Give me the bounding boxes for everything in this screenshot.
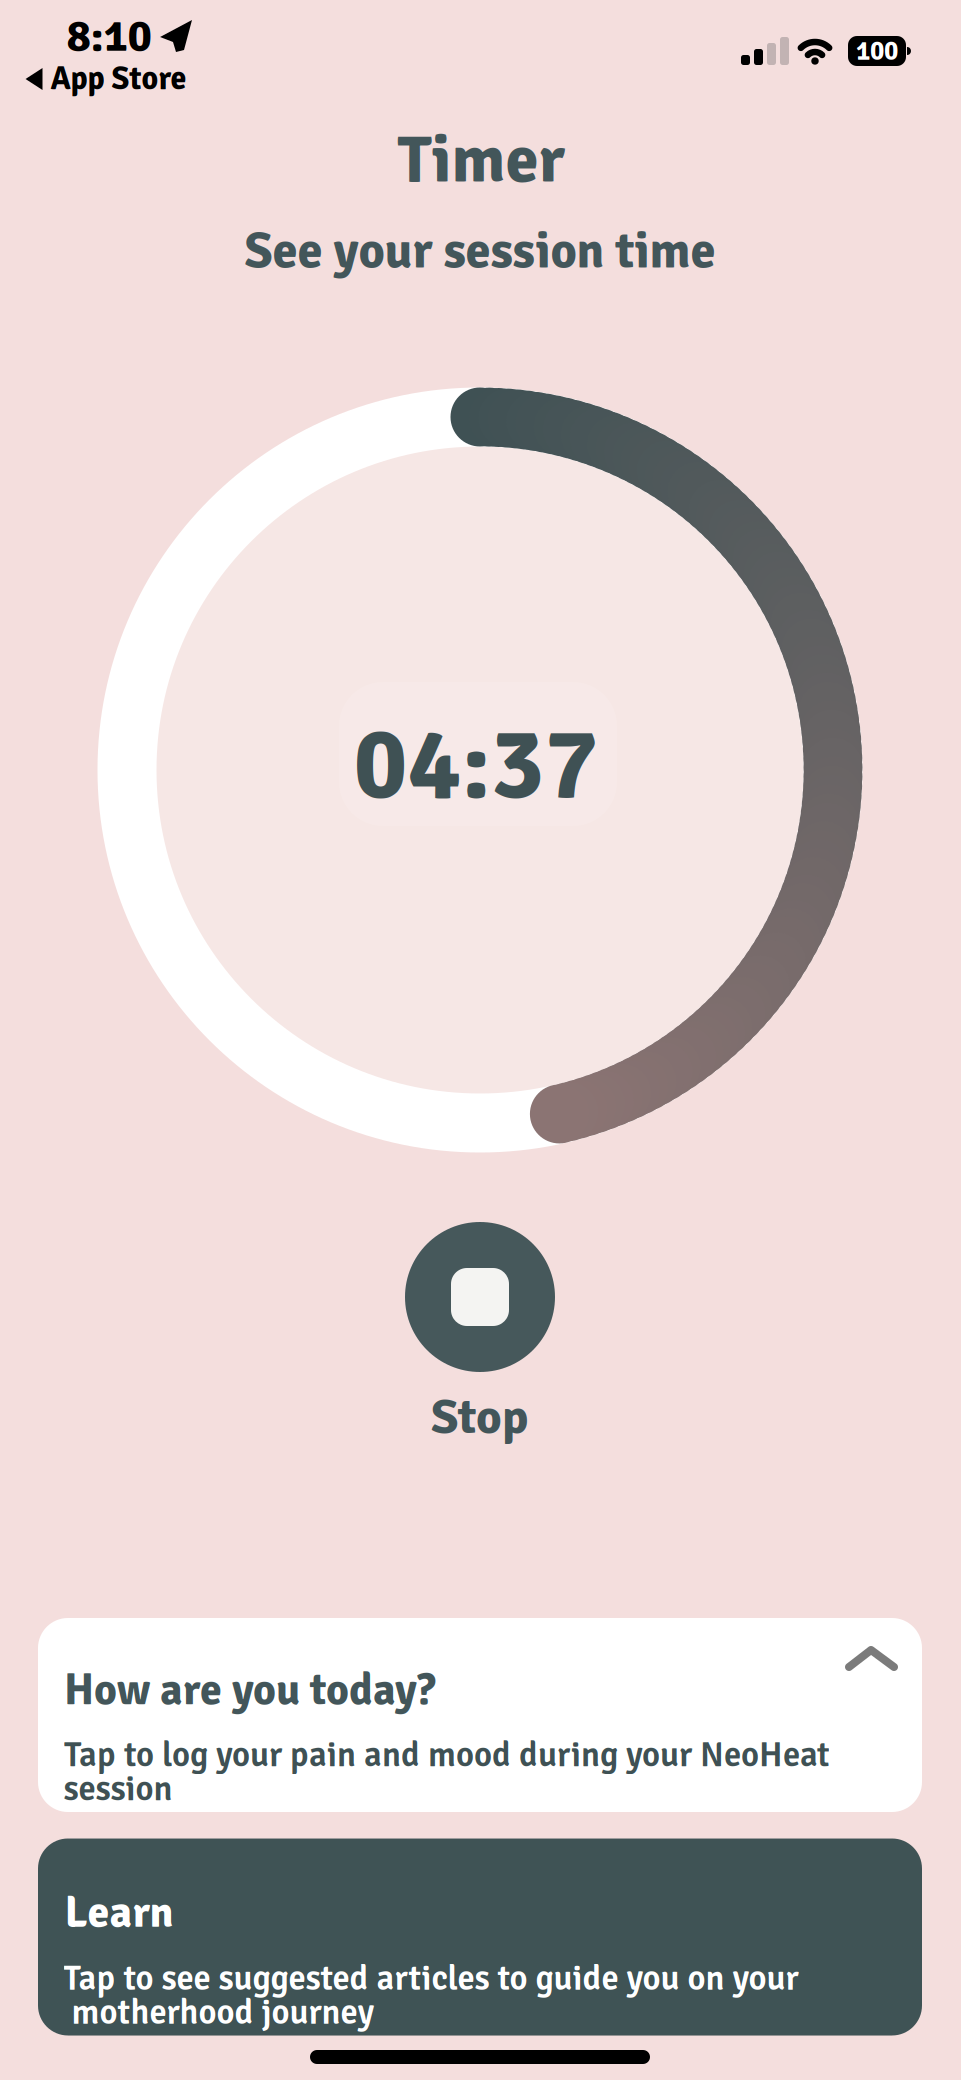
staticText: Tap to log your pain and mood during you… (64, 1734, 830, 1776)
staticText: Stop (431, 1387, 529, 1447)
staticText: Tap to see suggested articles to guide y… (63, 1957, 798, 2000)
staticText: See your session time (244, 220, 715, 282)
button[interactable]: Stop (400, 1222, 560, 1452)
button[interactable] (38, 1618, 922, 1812)
staticText: 04:37 (353, 703, 598, 827)
staticText: How are you today? (64, 1663, 436, 1717)
staticText: 100 (856, 35, 898, 67)
staticText: Learn (64, 1885, 173, 1940)
staticText: 8:10 (66, 8, 151, 64)
button[interactable]: Back to App Store (25, 59, 186, 99)
staticText: session (63, 1768, 172, 1810)
staticText: motherhood journey (63, 1991, 374, 2034)
staticText: Timer (397, 119, 564, 201)
staticText: App Store (50, 59, 186, 99)
button[interactable] (38, 1838, 922, 2035)
